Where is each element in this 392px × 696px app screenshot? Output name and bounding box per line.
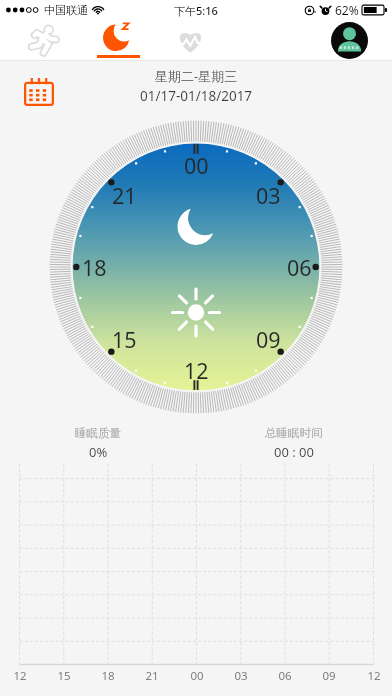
staticText: 00 : 00 (274, 443, 314, 461)
staticText: 12 (13, 668, 27, 684)
button[interactable]: Profile (322, 20, 376, 60)
staticText: 睡眠质量 (75, 426, 121, 440)
staticText: 03 (234, 668, 248, 684)
staticText: 21 (145, 668, 159, 684)
button[interactable]: Heart rate (163, 20, 217, 60)
staticText: 00 (184, 151, 209, 180)
button[interactable]: Sleep (91, 20, 145, 60)
button[interactable]: Running (16, 20, 70, 60)
staticText: 21 (112, 181, 137, 210)
staticText: 中国联通 (44, 3, 88, 17)
staticText: 12 (367, 668, 381, 684)
staticText: 03 (256, 181, 281, 210)
staticText: 01/17-01/18/2017 (140, 87, 253, 105)
staticText: 0% (89, 443, 108, 461)
staticText: 18 (101, 668, 115, 684)
staticText: 星期二-星期三 (155, 67, 238, 85)
staticText: 下午5:16 (174, 3, 218, 18)
staticText: 15 (112, 325, 137, 354)
staticText: 06 (287, 253, 312, 282)
staticText: 15 (57, 668, 71, 684)
staticText: 12 (184, 356, 209, 385)
staticText: 18 (82, 253, 107, 282)
staticText: 00 (190, 668, 204, 684)
staticText: 09 (322, 668, 336, 684)
button[interactable]: Calendar (24, 78, 62, 112)
staticText: 62% (335, 2, 359, 18)
staticText: 09 (256, 325, 281, 354)
staticText: 06 (278, 668, 292, 684)
staticText: 总睡眠时间 (265, 426, 323, 440)
